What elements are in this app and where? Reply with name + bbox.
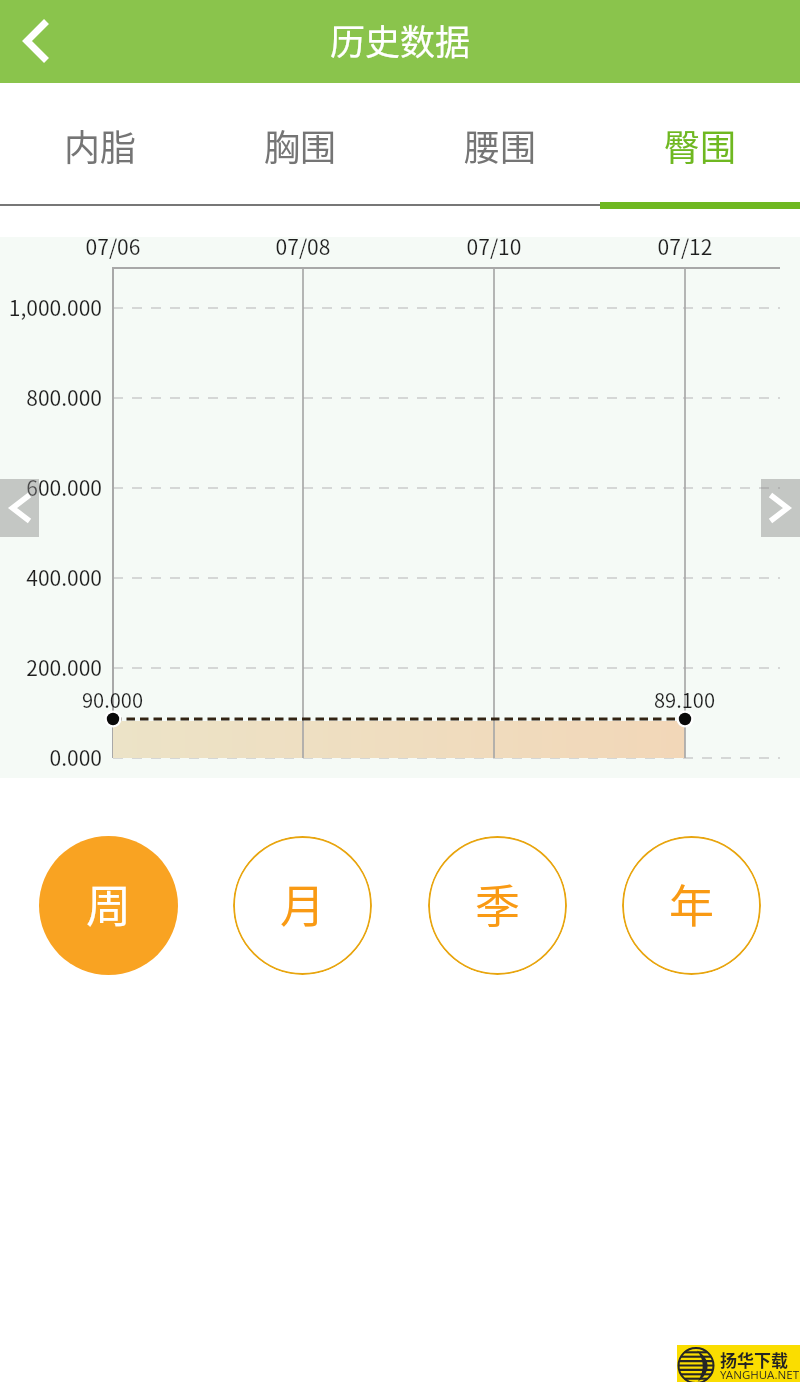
staticText: 扬华下载 (720, 1347, 788, 1372)
staticText: 07/12 (625, 231, 745, 261)
staticText: 90.000 (82, 685, 144, 714)
staticText: 历史数据 (330, 14, 471, 65)
staticText: 月 (280, 871, 326, 936)
button[interactable]: 月 (233, 836, 372, 975)
staticText: YANGHUA.NET (720, 1367, 800, 1382)
staticText: 400.000 (0, 562, 102, 592)
button[interactable]: Next (761, 479, 800, 537)
staticText: 600.000 (0, 472, 102, 502)
button[interactable]: Back (0, 0, 72, 83)
staticText: 腰围 (464, 119, 537, 171)
button[interactable]: 胸围 (200, 83, 400, 205)
staticText: 0.000 (0, 742, 102, 772)
staticText: 89.100 (654, 685, 716, 714)
staticText: 胸围 (264, 119, 337, 171)
staticText: 1,000.000 (0, 292, 102, 322)
button[interactable]: 内脂 (0, 83, 200, 205)
staticText: 臀围 (664, 119, 737, 171)
staticText: 年 (669, 871, 715, 936)
button[interactable]: 季 (428, 836, 567, 975)
staticText: 07/10 (434, 231, 554, 261)
staticText: 07/06 (53, 231, 173, 261)
staticText: 内脂 (64, 119, 137, 171)
button[interactable]: Previous (0, 479, 39, 537)
button[interactable]: 周 (39, 836, 178, 975)
button[interactable]: 年 (622, 836, 761, 975)
button[interactable]: 臀围 (600, 83, 800, 205)
button[interactable]: 腰围 (400, 83, 600, 205)
staticText: 周 (86, 871, 132, 936)
staticText: 季 (475, 871, 521, 936)
staticText: 800.000 (0, 382, 102, 412)
staticText: 200.000 (0, 652, 102, 682)
staticText: 07/08 (243, 231, 363, 261)
